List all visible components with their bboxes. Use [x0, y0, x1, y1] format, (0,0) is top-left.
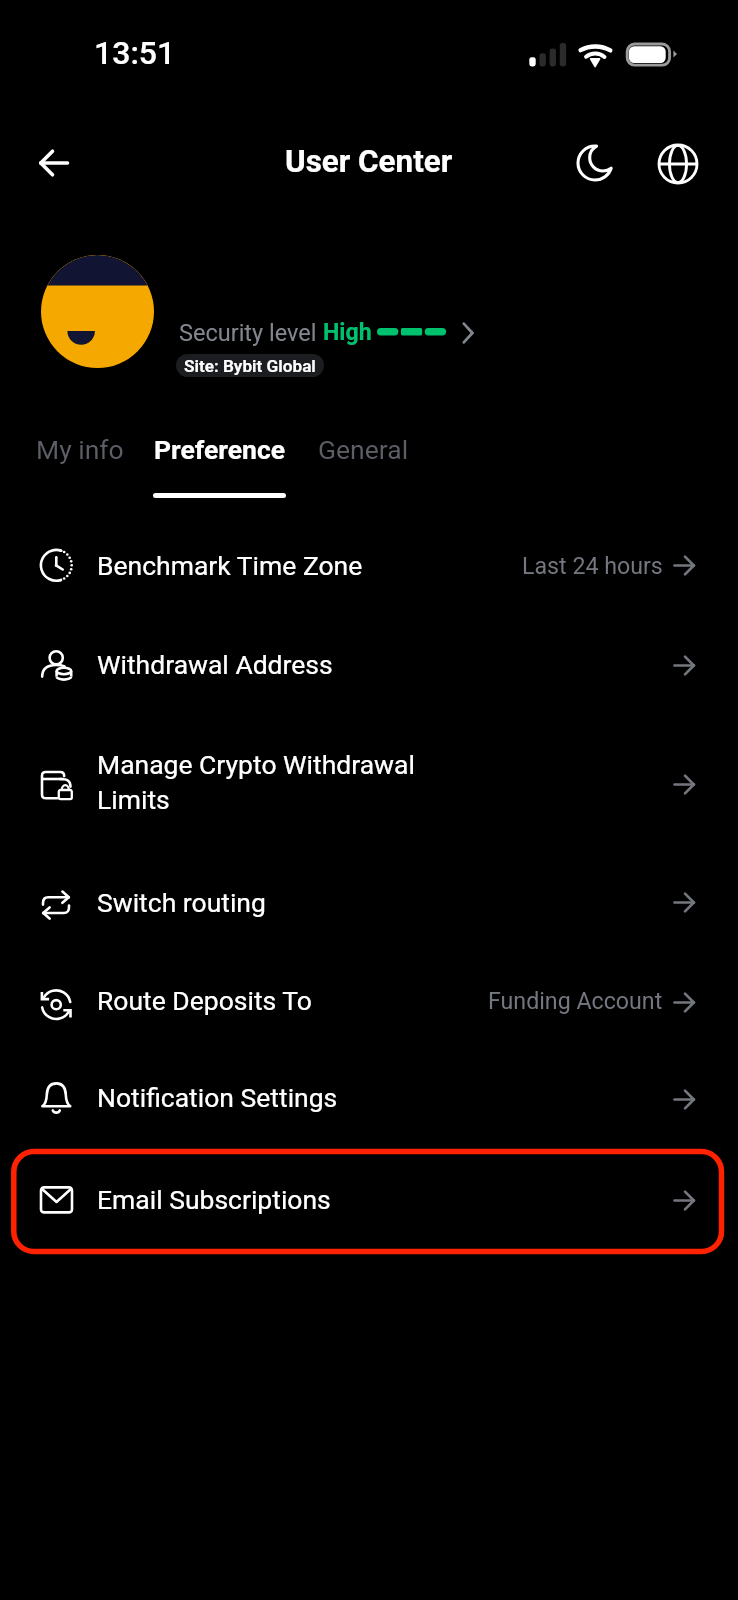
button[interactable]: Security level [176, 312, 478, 352]
button[interactable]: Site: Bybit Global [176, 354, 324, 377]
button[interactable]: Profile avatar [41, 255, 154, 368]
button[interactable]: Benchmark Time Zone [0, 515, 738, 615]
staticText: 13:51 [94, 34, 176, 72]
staticText: Security level [179, 319, 317, 347]
button[interactable]: Notification Settings [0, 1049, 738, 1149]
button[interactable]: Language [645, 131, 711, 197]
staticText: User Center [285, 143, 453, 180]
staticText: Route Deposits To [97, 985, 312, 1016]
staticText: Benchmark Time Zone [97, 550, 363, 581]
button[interactable]: Dark mode [562, 130, 628, 196]
button[interactable]: General [304, 422, 422, 510]
button[interactable]: Withdrawal Address [0, 615, 738, 715]
button[interactable]: Back [18, 128, 88, 198]
button[interactable]: My info [22, 422, 137, 510]
staticText: General [318, 434, 409, 465]
staticText: Last 24 hours [522, 552, 663, 579]
staticText: Email Subscriptions [97, 1184, 331, 1215]
button[interactable]: Switch routing [0, 852, 738, 952]
staticText: Site: Bybit Global [184, 356, 316, 376]
staticText: Withdrawal Address [97, 649, 333, 680]
staticText: Notification Settings [97, 1082, 338, 1113]
button[interactable]: Route Deposits To [0, 952, 738, 1052]
button[interactable]: Preference [138, 422, 301, 510]
staticText: Switch routing [97, 887, 266, 918]
staticText: Funding Account [488, 987, 663, 1014]
button[interactable]: Email Subscriptions [0, 1150, 738, 1250]
button[interactable]: Manage Crypto Withdrawal Limits [0, 715, 738, 853]
staticText: Preference [154, 434, 286, 465]
staticText: High [323, 318, 372, 345]
staticText: My info [36, 434, 124, 465]
staticText: Manage Crypto Withdrawal Limits [97, 749, 415, 816]
